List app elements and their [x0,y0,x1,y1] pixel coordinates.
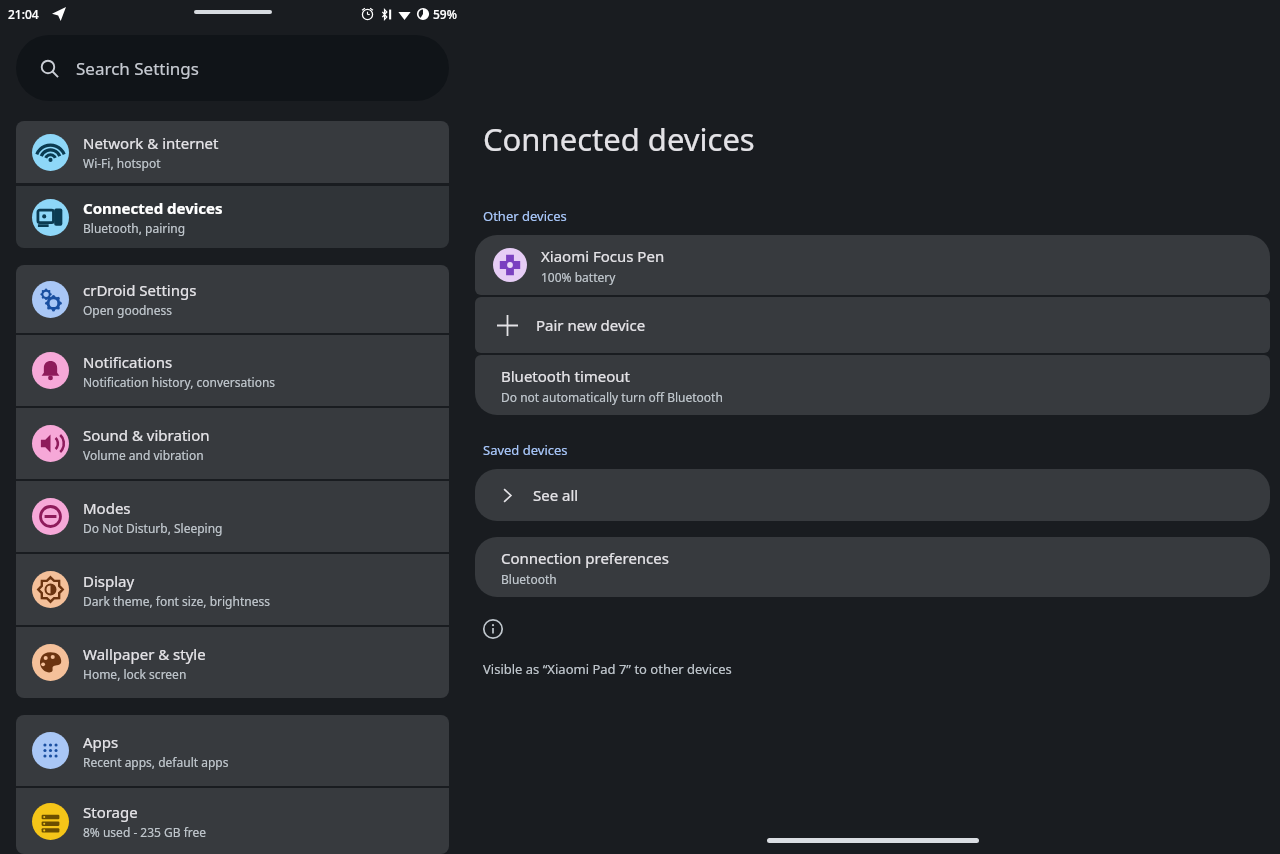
button[interactable]: Search Settings [16,35,449,101]
staticText: Search Settings [76,57,199,80]
staticText: Pair new device [536,315,646,335]
staticText: Network & internet [83,133,219,153]
button[interactable]: Connected devices [16,186,449,248]
button[interactable]: See all [475,469,1270,521]
staticText: 59% [433,6,457,22]
staticText: Modes [83,498,131,518]
button[interactable]: Connection preferences [475,537,1270,597]
staticText: Other devices [483,207,567,225]
staticText: Do Not Disturb, Sleeping [83,520,223,536]
staticText: Home, lock screen [83,666,187,682]
staticText: Connected devices [483,118,755,160]
button[interactable]: Network & internet [16,121,449,183]
button[interactable]: Xiaomi Focus Pen [475,235,1270,295]
button[interactable]: Bluetooth timeout [475,355,1270,415]
staticText: Xiaomi Focus Pen [541,246,665,266]
staticText: crDroid Settings [83,280,197,300]
staticText: Recent apps, default apps [83,754,229,770]
staticText: Notifications [83,352,173,372]
staticText: Storage [83,802,138,822]
staticText: Visible as “Xiaomi Pad 7” to other devic… [483,660,732,678]
button[interactable]: Wallpaper & style [16,627,449,698]
staticText: Wi-Fi, hotspot [83,155,161,171]
staticText: Sound & vibration [83,425,210,445]
staticText: Display [83,571,135,591]
staticText: Saved devices [483,441,568,459]
button[interactable]: Sound & vibration [16,408,449,479]
staticText: 8% used - 235 GB free [83,824,207,840]
staticText: 100% battery [541,269,616,285]
staticText: Connection preferences [501,548,669,568]
staticText: Volume and vibration [83,447,204,463]
staticText: See all [533,485,579,505]
staticText: Open goodness [83,302,173,318]
staticText: Bluetooth, pairing [83,220,186,236]
button[interactable]: Modes [16,481,449,552]
staticText: Dark theme, font size, brightness [83,593,270,609]
button[interactable]: Apps [16,715,449,786]
staticText: Bluetooth [501,571,557,587]
button[interactable]: Display [16,554,449,625]
staticText: Do not automatically turn off Bluetooth [501,389,723,405]
staticText: Wallpaper & style [83,644,206,664]
staticText: Connected devices [83,198,223,218]
button[interactable]: crDroid Settings [16,265,449,333]
button[interactable]: Pair new device [475,297,1270,353]
staticText: Bluetooth timeout [501,366,631,386]
staticText: 21:04 [8,6,39,22]
staticText: Apps [83,732,119,752]
button[interactable]: Storage [16,788,449,854]
button[interactable]: Notifications [16,335,449,406]
staticText: Notification history, conversations [83,374,276,390]
